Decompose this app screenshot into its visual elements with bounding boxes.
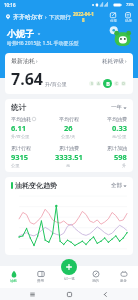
button[interactable]: 累计加油 (88, 145, 127, 168)
staticText: 记录 (125, 19, 132, 23)
button[interactable]: Share (108, 11, 118, 23)
staticText: 小妮子 (7, 28, 34, 39)
staticText: 齐齐哈尔市 (13, 13, 43, 21)
button[interactable]: 一年 (111, 104, 127, 111)
staticText: B (106, 80, 110, 87)
staticText: 统计 (11, 103, 26, 112)
staticText: 26 (64, 123, 73, 133)
staticText: 一年 (111, 104, 122, 111)
button[interactable]: 齐齐哈尔市 (5, 11, 94, 23)
staticText: A (97, 81, 100, 86)
staticText: 耗耗评级 (102, 58, 124, 65)
staticText: D (122, 81, 125, 86)
staticText: 全部 (111, 182, 122, 189)
button[interactable]: 累计行程 (11, 145, 49, 168)
staticText: 哈弗H6 2015款 1.5L 手动要乐型 (7, 40, 79, 47)
button[interactable]: 全部 (111, 182, 127, 189)
staticText: 元 (66, 163, 71, 168)
staticText: 公里/天 (61, 134, 76, 140)
staticText: 油耗 (10, 279, 18, 284)
staticText: 油耗变化趋势 (15, 181, 57, 190)
button[interactable]: 小妮子 (7, 28, 79, 47)
button[interactable]: 平均行程 (49, 116, 88, 140)
staticText: 累计行程 (11, 145, 31, 151)
button[interactable]: 油耗 (0, 266, 27, 288)
staticText: 6.11 (11, 123, 26, 133)
staticText: 元/公里 (112, 134, 127, 140)
staticText: 费用 (37, 279, 45, 284)
staticText: › (36, 58, 38, 65)
staticText: 升 (122, 163, 127, 168)
staticText: C (115, 81, 118, 86)
button[interactable]: Records (123, 11, 133, 23)
button[interactable]: 累计油费 (49, 145, 88, 168)
staticText: › (45, 14, 47, 21)
button[interactable]: Add record (61, 259, 77, 275)
button[interactable]: 平均油耗 (11, 116, 49, 140)
staticText: 分享 (110, 19, 117, 23)
staticText: › (125, 58, 127, 65)
staticText: 0.33 (112, 123, 127, 133)
button[interactable]: 最新油耗 (5, 53, 133, 94)
staticText: 7.64 (11, 68, 43, 90)
staticText: 8 (82, 17, 85, 23)
staticText: 平均油费 (107, 116, 127, 122)
staticText: 记一笔 (64, 277, 75, 282)
staticText: 升/百公里 (45, 81, 67, 88)
staticText: 9315 (11, 152, 29, 162)
button[interactable]: 服务 (110, 266, 138, 288)
staticText: 下次限行 (49, 14, 71, 21)
button[interactable]: Car avatar (108, 25, 132, 49)
button[interactable]: 我的 (82, 266, 110, 288)
staticText: 升/百公里 (11, 134, 30, 140)
staticText: 我的 (92, 279, 100, 284)
staticText: 最新油耗 (11, 57, 35, 65)
staticText: 3333.51 (55, 152, 83, 162)
staticText: 10:16 (4, 2, 16, 8)
staticText: 累计油费 (59, 145, 79, 151)
staticText: 598 (114, 152, 127, 162)
button[interactable]: 费用 (27, 266, 54, 288)
staticText: S (91, 81, 93, 86)
button[interactable]: 平均油费 (88, 116, 127, 140)
staticText: 累计加油 (107, 145, 127, 151)
staticText: 平均油耗 (11, 116, 31, 122)
staticText: 2022-04-1 (73, 11, 94, 17)
staticText: 服务 (120, 279, 128, 284)
staticText: 公里 (11, 163, 20, 168)
staticText: 平均行程 (59, 116, 79, 122)
staticText: 73% (126, 2, 134, 7)
